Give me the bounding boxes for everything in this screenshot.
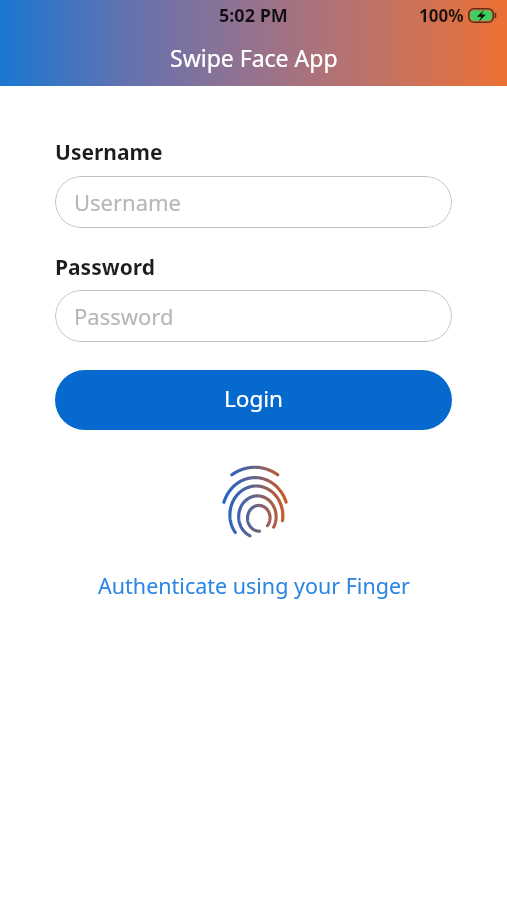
staticText: Password <box>74 301 174 331</box>
staticText: Username <box>55 138 163 167</box>
staticText: Username <box>74 187 182 217</box>
staticText: Password <box>55 253 156 282</box>
other: Battery charging <box>468 8 497 23</box>
staticText: 100% <box>419 4 464 27</box>
button[interactable]: Username <box>55 176 452 228</box>
button[interactable]: Authenticate with fingerprint <box>55 465 452 600</box>
staticText: Login <box>224 383 283 414</box>
button[interactable]: Login <box>55 370 452 430</box>
staticText: Authenticate using your Finger <box>98 571 410 600</box>
other: Authenticate with fingerprint <box>216 465 292 557</box>
staticText: Swipe Face App <box>170 42 338 73</box>
staticText: 5:02 PM <box>219 3 288 28</box>
button[interactable]: Password <box>55 290 452 342</box>
